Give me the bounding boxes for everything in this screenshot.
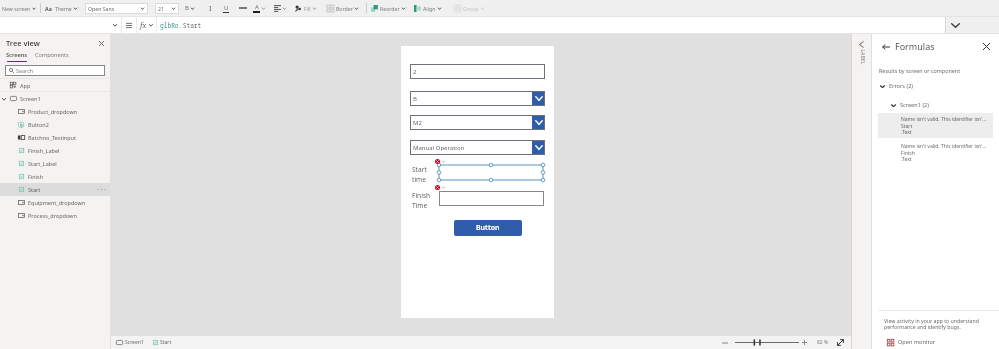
button[interactable]: 2 [410,64,545,79]
button[interactable]: Equipment_dropdown [0,196,110,209]
button[interactable]: Zoom slider [735,339,799,346]
button[interactable]: Border [327,0,362,16]
button[interactable]: Finish [0,170,110,183]
button[interactable]: Underline [222,0,232,16]
staticText: Equipment_dropdown [28,199,86,206]
staticText: M2 [413,119,422,127]
button[interactable]: Start [152,336,173,349]
button[interactable]: Strikethrough [238,0,249,16]
staticText: Tree view [6,38,40,48]
staticText: Reorder [380,5,400,12]
staticText: Start [28,186,41,193]
staticText: Border [336,5,353,12]
staticText: Formulas [895,40,935,52]
button[interactable]: M2 [410,115,545,130]
button[interactable]: Font color [253,0,271,16]
button[interactable]: Components [35,51,69,59]
staticText: Batchno_Textinput [28,134,76,141]
button[interactable]: Group [454,0,488,16]
staticText: Screens [6,51,28,59]
button[interactable]: Align [414,0,445,16]
staticText: Time [412,201,428,210]
button[interactable]: Open monitor [872,337,941,347]
button[interactable]: B [185,0,202,16]
staticText: Finish [412,191,431,200]
button[interactable]: Screen1 [115,336,145,349]
button[interactable]: Property selector [109,18,121,32]
button[interactable]: Manual Operation [410,140,545,155]
staticText: Finish_Label [28,147,60,154]
staticText: Group [463,5,479,12]
button[interactable]: Align text [274,0,291,16]
button[interactable]: Zoom in [800,336,809,349]
button[interactable]: Name isn't valid. This identifier isn'… … [878,113,993,138]
staticText: Start_Label [28,160,57,167]
button[interactable]: Name isn't valid. This identifier isn'… … [878,140,993,165]
staticText: Theme [55,5,72,12]
button[interactable]: App [0,79,110,91]
staticText: 21 [158,5,164,12]
staticText: Open monitor [898,338,936,346]
staticText: Results by screen or component [879,67,961,74]
staticText: Fill [304,5,311,12]
staticText: A [255,3,259,11]
staticText: glbRo [160,21,179,29]
button[interactable]: Search [5,65,105,76]
button[interactable]: Open Sans [85,3,148,14]
button[interactable]: Close tree view [97,39,106,48]
button[interactable]: Close formulas [981,41,992,52]
button[interactable]: Fill [295,0,322,16]
staticText: 2 [413,68,417,76]
staticText: Aa [45,5,52,12]
staticText: View activity in your app to understand … [884,317,979,331]
button[interactable]: B [410,91,545,106]
button[interactable]: Back [880,41,891,52]
button[interactable]: Process_dropdown [0,209,110,222]
button[interactable]: Screens [5,51,29,62]
staticText: U [224,4,229,12]
button[interactable]: New screen [2,0,36,16]
button[interactable]: Finish_Label [0,144,110,157]
staticText: Name isn't valid. This identifier isn'… … [901,143,987,162]
button[interactable]: Button2 [0,118,110,131]
button[interactable]: Aa [45,0,82,16]
staticText: time [412,175,426,184]
staticText: Screen1 [125,339,144,346]
staticText: Button2 [28,121,49,128]
button[interactable]: Expand properties panel [852,34,871,349]
staticText: LABEL [858,49,865,65]
staticText: Product_dropdown [28,108,78,115]
staticText: fx [140,20,147,30]
staticText: Screen1 [20,95,41,102]
button[interactable]: Screen1 (2) [872,100,935,110]
staticText: Search [16,67,34,74]
staticText: Align [423,5,436,12]
button[interactable]: Button [454,220,522,236]
button[interactable]: Screen1 [0,92,110,105]
button[interactable]: Expand [946,17,999,33]
staticText: B [413,95,417,103]
staticText: .Start [179,21,202,29]
button[interactable]: Reorder [371,0,408,16]
staticText: Finish [28,173,44,180]
button[interactable]: 21 [155,3,179,14]
button[interactable]: Batchno_Textinput [0,131,110,144]
staticText: 82 % [817,339,829,346]
staticText: Components [35,51,69,59]
button[interactable]: More options [93,188,110,191]
staticText: Screen1 (2) [900,101,929,109]
staticText: Name isn't valid. This identifier isn'… … [901,116,987,135]
button[interactable]: Errors (2) [872,81,920,91]
button[interactable]: Zoom out [720,336,730,349]
staticText: Process_dropdown [28,212,77,219]
button[interactable]: Product_dropdown [0,105,110,118]
staticText: Start [160,339,172,346]
button[interactable]: Expand formula bar [122,19,136,32]
button[interactable]: fx [140,17,154,33]
button[interactable] [439,191,544,206]
button[interactable]: Start [0,183,110,196]
button[interactable]: Italic [207,0,217,16]
button[interactable]: Fit to screen [834,336,846,349]
button[interactable]: Start_Label [0,157,110,170]
staticText: New screen [2,5,31,12]
